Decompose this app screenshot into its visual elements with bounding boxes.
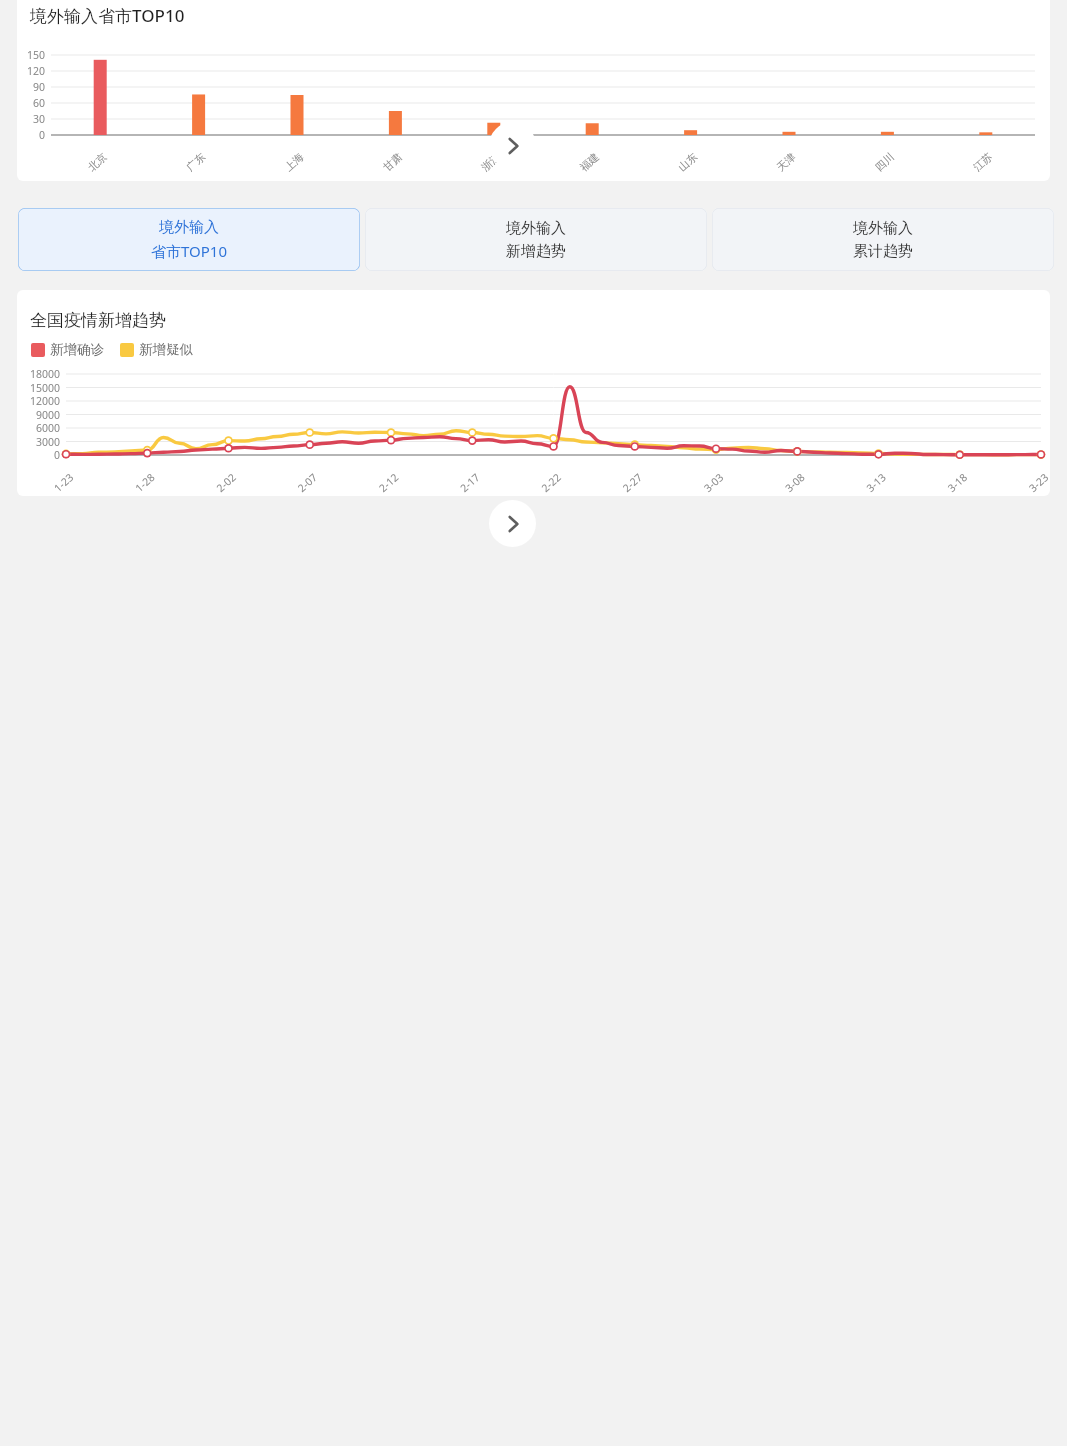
button[interactable]: 境外输入	[365, 208, 707, 271]
staticText: 全国疫情新增趋势	[30, 310, 166, 331]
staticText: 新增疑似	[139, 341, 193, 358]
staticText: 累计趋势	[853, 242, 913, 261]
staticText: 境外输入	[853, 219, 913, 238]
staticText: 境外输入	[159, 218, 219, 237]
staticText: 新增确诊	[50, 341, 104, 358]
staticText: 境外输入	[506, 219, 566, 238]
staticText: 境外输入省市TOP10	[30, 4, 185, 27]
button[interactable]: 境外输入	[18, 208, 360, 271]
button[interactable]: 境外输入	[712, 208, 1054, 271]
staticText: 省市TOP10	[151, 241, 227, 261]
staticText: 新增趋势	[506, 242, 566, 261]
button[interactable]: Next chart	[489, 500, 536, 547]
button[interactable]: Next chart	[489, 122, 536, 169]
